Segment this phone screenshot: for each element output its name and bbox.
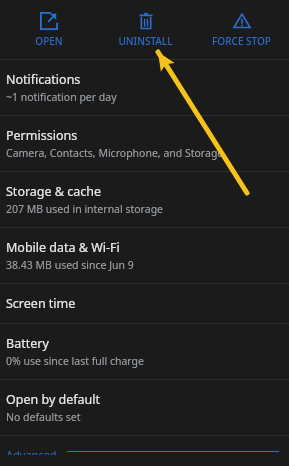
staticText: Permissions [6, 127, 78, 144]
staticText: Advanced [6, 447, 57, 455]
button[interactable]: Open by default [0, 380, 289, 435]
staticText: Mobile data & Wi-Fi [6, 239, 120, 256]
staticText: Storage & cache [6, 183, 102, 200]
staticText: OPEN [35, 34, 63, 48]
staticText: 38.43 MB used since Jun 9 [6, 258, 134, 272]
button[interactable]: Open app [35, 8, 63, 52]
staticText: Screen time [6, 295, 76, 312]
button[interactable]: Uninstall app [118, 8, 173, 52]
button[interactable]: Advanced [0, 436, 289, 466]
staticText: UNINSTALL [118, 34, 173, 48]
button[interactable]: Mobile data & Wi-Fi [0, 228, 289, 283]
button[interactable]: Force stop app [212, 8, 271, 52]
staticText: Open by default [6, 391, 101, 408]
button[interactable]: Screen time [0, 284, 289, 323]
staticText: No defaults set [6, 410, 81, 424]
button[interactable]: Notifications [0, 60, 289, 115]
staticText: ~1 notification per day [6, 90, 117, 104]
staticText: Camera, Contacts, Microphone, and Storag… [6, 146, 224, 160]
staticText: Battery [6, 335, 49, 352]
button[interactable]: Permissions [0, 116, 289, 171]
button[interactable]: Battery [0, 324, 289, 379]
staticText: Notifications [6, 71, 81, 88]
staticText: FORCE STOP [212, 34, 271, 48]
staticText: 0% use since last full charge [6, 354, 144, 368]
staticText: 207 MB used in internal storage [6, 202, 164, 216]
button[interactable]: Storage & cache [0, 172, 289, 227]
